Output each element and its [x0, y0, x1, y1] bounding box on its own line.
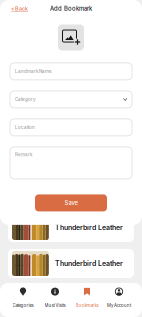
button[interactable]: Remark [10, 147, 132, 179]
button[interactable]: Location [10, 119, 132, 136]
button[interactable]: Thunderbird Leather [0, 213, 142, 242]
button[interactable]: Category [10, 91, 132, 108]
staticText: Thunderbird Leather [55, 223, 123, 232]
button[interactable]: Add photo [58, 24, 84, 50]
staticText: Remark [15, 152, 32, 157]
button[interactable]: Thunderbird Leather [0, 249, 142, 278]
button[interactable]: Bookmarks [71, 283, 103, 317]
staticText: Add Bookmark [50, 5, 92, 12]
staticText: Category [15, 97, 36, 102]
staticText: Categories [12, 303, 33, 308]
button[interactable]: My Account [103, 283, 135, 317]
staticText: My Account [107, 303, 131, 308]
button[interactable]: Landmark Name [10, 63, 132, 80]
button[interactable]: Save [35, 194, 107, 211]
staticText: Must Visits [44, 303, 65, 308]
staticText: <Back [11, 5, 28, 12]
button[interactable]: Categories [7, 283, 39, 317]
button[interactable]: <Back [0, 2, 34, 15]
staticText: Bookmarks [75, 303, 98, 308]
staticText: Thunderbird Leather [55, 259, 123, 268]
staticText: Save [64, 199, 77, 206]
staticText: Location [15, 125, 35, 130]
button[interactable]: Must Visits [39, 283, 71, 317]
staticText: Landmark Name [15, 69, 52, 74]
